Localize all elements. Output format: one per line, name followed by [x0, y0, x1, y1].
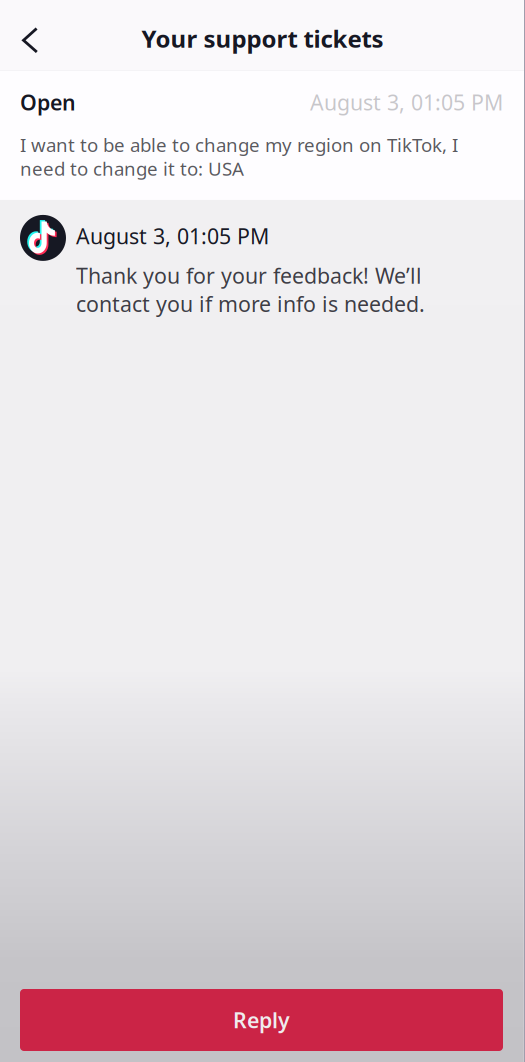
staticText: Open — [20, 88, 76, 116]
staticText: Reply — [233, 1006, 290, 1034]
button[interactable]: Reply — [20, 989, 503, 1051]
button[interactable]: Back — [0, 0, 52, 70]
staticText: Your support tickets — [141, 23, 383, 54]
staticText: Thank you for your feedback! We’ll conta… — [76, 261, 425, 318]
staticText: August 3, 01:05 PM — [310, 88, 503, 116]
staticText: I want to be able to change my region on… — [20, 132, 458, 181]
staticText: August 3, 01:05 PM — [76, 222, 269, 250]
